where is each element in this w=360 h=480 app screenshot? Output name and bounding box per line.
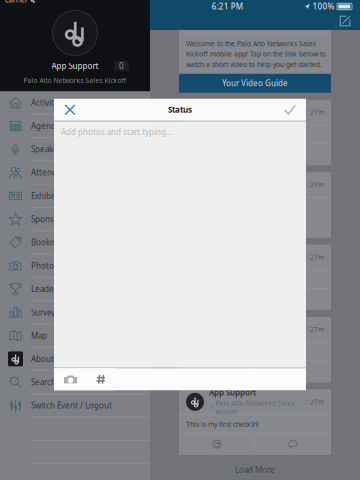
button[interactable]: Surveys: [0, 301, 150, 324]
button[interactable]: Agenda: [0, 115, 150, 138]
button[interactable]: Attendees: [0, 161, 150, 185]
button[interactable]: Speakers: [0, 138, 150, 161]
button[interactable]: Exhibitors: [0, 185, 150, 208]
staticText: 27m: [310, 108, 324, 117]
staticText: Search: [31, 377, 56, 387]
staticText: Switch Event / Logout: [31, 400, 112, 411]
button[interactable]: Comment: [255, 289, 331, 310]
staticText: Palo Alto Networks Sales Kickoff: [23, 76, 126, 85]
button[interactable]: Photos: [0, 254, 150, 278]
staticText: Load More: [235, 464, 275, 475]
staticText: Map: [31, 330, 47, 341]
staticText: 6:21 PM: [212, 1, 243, 12]
button[interactable]: Compose post: [333, 13, 357, 29]
button[interactable]: Search: [0, 371, 150, 394]
button[interactable]: Close: [54, 99, 86, 121]
button[interactable]: Bookmarks: [0, 231, 150, 254]
staticText: This is my first checkIn!: [186, 420, 259, 428]
staticText: 100%: [312, 1, 334, 12]
button[interactable]: Comment: [255, 434, 331, 455]
staticText: Bookmarks: [31, 237, 72, 248]
staticText: Promoted Post: [187, 24, 233, 33]
button[interactable]: Map: [0, 324, 150, 348]
staticText: About: [31, 354, 54, 364]
staticText: Photos: [31, 260, 58, 271]
button[interactable]: About: [0, 348, 150, 371]
staticText: Status: [168, 104, 192, 115]
button[interactable]: React: [179, 434, 255, 455]
staticText: Your Video Guide: [222, 78, 288, 88]
staticText: Speakers: [31, 144, 65, 154]
button[interactable]: Comment: [255, 217, 331, 238]
staticText: App Support: [51, 61, 98, 71]
button[interactable]: Load More: [179, 462, 331, 478]
button[interactable]: React: [179, 361, 255, 382]
staticText: Surveys: [31, 307, 59, 318]
staticText: Exhibitors: [31, 190, 68, 201]
staticText: Activity: [31, 97, 58, 108]
staticText: Agenda: [31, 121, 60, 131]
staticText: 27m: [310, 325, 324, 334]
button[interactable]: Comment: [255, 361, 331, 382]
button[interactable]: Sponsors: [0, 208, 150, 231]
button[interactable]: Add hashtag: [87, 368, 115, 390]
button[interactable]: Post status: [274, 99, 306, 121]
button[interactable]: Activity: [0, 91, 150, 115]
button[interactable]: Your Video Guide: [179, 74, 331, 93]
staticText: Sponsors: [31, 214, 66, 224]
button[interactable]: Leaderboard: [0, 278, 150, 301]
button[interactable]: Comment: [255, 144, 331, 165]
staticText: watch a short video to help you get star…: [186, 60, 322, 69]
staticText: Palo Alto Networks Sales Kickoff: [215, 399, 294, 416]
staticText: 27m: [310, 180, 324, 189]
staticText: Kickoff mobile app! Tap on the link belo…: [186, 50, 326, 58]
staticText: Welcome to the Palo Alto Networks Sales: [186, 39, 316, 48]
staticText: App Support: [209, 387, 256, 398]
staticText: Carrier: [5, 0, 28, 4]
staticText: Attendees: [31, 167, 71, 178]
staticText: 27m: [310, 397, 324, 406]
staticText: 0: [119, 61, 124, 71]
staticText: Leaderboard: [31, 284, 79, 294]
button[interactable]: Add photo: [54, 368, 87, 390]
button[interactable]: Switch Event / Logout: [0, 394, 150, 418]
staticText: Add photos and start typing...: [61, 126, 172, 137]
staticText: 27m: [310, 253, 324, 261]
